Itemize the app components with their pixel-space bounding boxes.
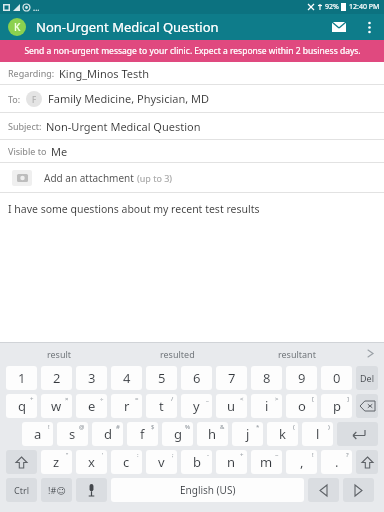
staticText: p: [333, 397, 341, 415]
button[interactable]: More options: [354, 14, 384, 40]
button[interactable]: [308, 478, 339, 502]
staticText: result: [47, 348, 72, 360]
button[interactable]: Add an attachment: [0, 163, 384, 192]
button[interactable]: Ctrl: [6, 478, 37, 502]
staticText: ...: [33, 2, 40, 13]
button[interactable]: 7: [216, 366, 247, 390]
button[interactable]: [356, 394, 378, 418]
staticText: &: [220, 423, 225, 431]
staticText: Family Medicine, Physician, MD: [48, 91, 210, 106]
button[interactable]: t: [146, 394, 177, 418]
staticText: 3: [88, 369, 96, 387]
button[interactable]: g: [162, 422, 193, 446]
button[interactable]: x: [76, 450, 107, 474]
button[interactable]: 1: [6, 366, 37, 390]
button[interactable]: j: [232, 422, 263, 446]
button[interactable]: a: [22, 422, 53, 446]
button[interactable]: y: [181, 394, 212, 418]
button[interactable]: k: [267, 422, 298, 446]
button[interactable]: c: [111, 450, 142, 474]
staticText: f: [140, 425, 145, 443]
button[interactable]: 9: [286, 366, 317, 390]
button[interactable]: English (US): [111, 478, 304, 502]
staticText: Add an attachment: [44, 171, 137, 185]
button[interactable]: Visible to: [0, 140, 384, 162]
button[interactable]: q: [6, 394, 37, 418]
staticText: 7: [228, 369, 236, 387]
button[interactable]: 0: [321, 366, 352, 390]
staticText: ×: [65, 395, 69, 403]
button[interactable]: K: [8, 18, 26, 36]
staticText: 92%: [325, 2, 339, 12]
staticText: King_Minos Testh: [59, 66, 150, 81]
button[interactable]: [76, 478, 107, 502]
staticText: t: [159, 397, 164, 415]
staticText: 12:40 PM: [349, 2, 380, 12]
button[interactable]: .: [321, 450, 352, 474]
button[interactable]: !#☺: [41, 478, 72, 502]
button[interactable]: 4: [111, 366, 142, 390]
staticText: ÷: [100, 395, 104, 403]
button[interactable]: 6: [181, 366, 212, 390]
button[interactable]: u: [216, 394, 247, 418]
button[interactable]: 2: [41, 366, 72, 390]
button[interactable]: result: [0, 343, 118, 364]
button[interactable]: v: [146, 450, 177, 474]
staticText: To:: [8, 93, 21, 105]
button[interactable]: i: [251, 394, 282, 418]
button[interactable]: o: [286, 394, 317, 418]
staticText: /: [171, 395, 174, 403]
staticText: >: [275, 395, 279, 403]
staticText: !: [312, 451, 314, 459]
staticText: ': [102, 451, 104, 459]
button[interactable]: p: [321, 394, 352, 418]
button[interactable]: Send message: [324, 14, 354, 40]
button[interactable]: [6, 450, 37, 474]
button[interactable]: I have some questions about my recent te…: [8, 202, 384, 216]
staticText: <: [240, 395, 244, 403]
button[interactable]: 5: [146, 366, 177, 390]
button[interactable]: [337, 422, 378, 446]
button[interactable]: n: [216, 450, 247, 474]
staticText: resulted: [160, 348, 195, 360]
button[interactable]: r: [111, 394, 142, 418]
button[interactable]: To:: [0, 85, 384, 112]
staticText: Non-Urgent Medical Question: [46, 119, 201, 134]
button[interactable]: 8: [251, 366, 282, 390]
button[interactable]: m: [251, 450, 282, 474]
button[interactable]: z: [41, 450, 72, 474]
staticText: a: [34, 425, 42, 443]
staticText: r: [124, 397, 130, 415]
staticText: v: [158, 453, 165, 471]
staticText: 6: [193, 369, 201, 387]
staticText: (: [293, 423, 295, 431]
staticText: (up to 3): [137, 172, 173, 184]
button[interactable]: Regarding:: [0, 62, 384, 84]
staticText: q: [18, 397, 26, 415]
button[interactable]: [356, 450, 378, 474]
staticText: =: [135, 395, 139, 403]
button[interactable]: e: [76, 394, 107, 418]
staticText: b: [193, 453, 201, 471]
button[interactable]: w: [41, 394, 72, 418]
button[interactable]: Subject:: [0, 113, 384, 139]
button[interactable]: ,: [286, 450, 317, 474]
button[interactable]: [343, 478, 374, 502]
button[interactable]: b: [181, 450, 212, 474]
staticText: y: [193, 397, 200, 415]
button[interactable]: s: [57, 422, 88, 446]
button[interactable]: More suggestions: [356, 343, 384, 364]
staticText: _: [206, 395, 209, 403]
staticText: ,: [300, 453, 304, 471]
staticText: c: [123, 453, 130, 471]
button[interactable]: l: [302, 422, 333, 446]
button[interactable]: 3: [76, 366, 107, 390]
staticText: resultant: [278, 348, 316, 360]
button[interactable]: resultant: [237, 343, 356, 364]
button[interactable]: h: [197, 422, 228, 446]
button[interactable]: Del: [356, 366, 378, 390]
staticText: [: [312, 395, 314, 403]
button[interactable]: resulted: [118, 343, 237, 364]
button[interactable]: f: [127, 422, 158, 446]
button[interactable]: d: [92, 422, 123, 446]
